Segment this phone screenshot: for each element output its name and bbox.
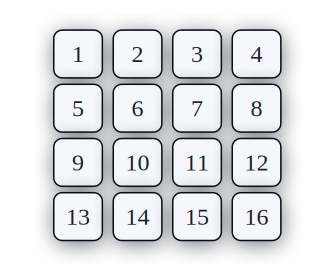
button[interactable]: 15	[173, 193, 221, 240]
button[interactable]: 14	[113, 193, 162, 240]
staticText: 15	[185, 203, 209, 230]
staticText: 11	[185, 149, 209, 176]
staticText: 7	[191, 95, 203, 121]
button[interactable]: 16	[232, 193, 281, 240]
button[interactable]: 4	[232, 30, 281, 78]
staticText: 9	[72, 149, 84, 176]
staticText: 8	[251, 95, 263, 121]
staticText: 3	[191, 41, 203, 67]
staticText: 16	[245, 203, 269, 230]
button[interactable]: 12	[232, 138, 281, 186]
staticText: 5	[72, 95, 84, 121]
staticText: 1	[72, 41, 84, 67]
button[interactable]: 7	[173, 84, 221, 132]
button[interactable]: 3	[173, 30, 221, 78]
button[interactable]: 10	[113, 138, 162, 186]
button[interactable]: 2	[113, 30, 162, 78]
button[interactable]: 1	[54, 30, 102, 78]
button[interactable]: 5	[54, 84, 102, 132]
staticText: 13	[66, 203, 90, 230]
button[interactable]: 8	[232, 84, 281, 132]
staticText: 10	[125, 149, 149, 176]
staticText: 2	[131, 41, 143, 67]
button[interactable]: 13	[54, 193, 102, 240]
staticText: 4	[251, 41, 263, 67]
button[interactable]: 9	[54, 138, 102, 186]
button[interactable]: 11	[173, 138, 221, 186]
staticText: 14	[125, 203, 149, 230]
staticText: 12	[245, 149, 269, 176]
staticText: 6	[131, 95, 143, 121]
button[interactable]: 6	[113, 84, 162, 132]
